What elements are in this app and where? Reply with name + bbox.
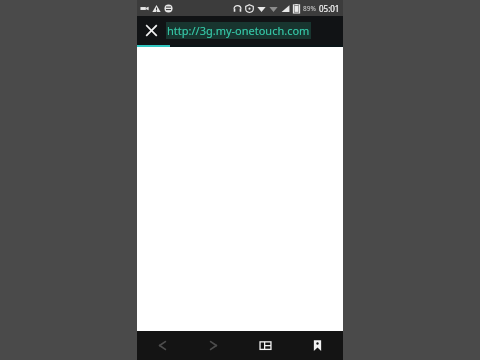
- staticText: 05:01: [319, 3, 340, 14]
- staticText: 89%: [303, 4, 316, 13]
- button[interactable]: Forward: [188, 331, 239, 360]
- button[interactable]: Stop loading: [137, 16, 166, 45]
- button[interactable]: Bookmarks: [291, 331, 343, 360]
- button[interactable]: Tabs: [239, 331, 291, 360]
- button[interactable]: Back: [137, 331, 188, 360]
- button[interactable]: http://3g.my-onetouch.com: [166, 16, 339, 45]
- staticText: http://3g.my-onetouch.com: [167, 23, 310, 38]
